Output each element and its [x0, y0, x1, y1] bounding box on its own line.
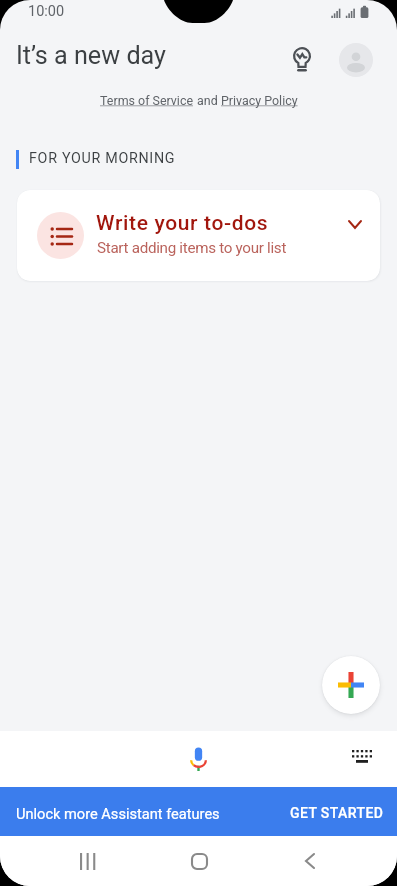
- staticText: FOR YOUR MORNING: [29, 150, 176, 167]
- staticText: It’s a new day: [16, 41, 167, 71]
- staticText: 10:00: [28, 3, 65, 20]
- button[interactable]: Account: [339, 43, 373, 77]
- staticText: Start adding items to your list: [97, 239, 287, 257]
- button[interactable]: Home: [179, 841, 219, 881]
- button[interactable]: Back: [290, 841, 330, 881]
- button[interactable]: Add: [322, 656, 380, 714]
- staticText: Write your to-dos: [96, 211, 269, 236]
- button[interactable]: Write your to-dos: [17, 190, 380, 281]
- button[interactable]: Recents: [68, 841, 108, 881]
- button[interactable]: Privacy Policy: [221, 93, 298, 108]
- button[interactable]: Voice input: [174, 735, 222, 783]
- button[interactable]: Unlock more Assistant features: [0, 787, 397, 836]
- button[interactable]: Explore: [282, 39, 322, 79]
- button[interactable]: Keyboard: [342, 736, 382, 776]
- staticText: and: [194, 93, 221, 108]
- staticText: GET STARTED: [290, 805, 384, 821]
- button[interactable]: Expand: [339, 208, 371, 240]
- button[interactable]: Terms of Service: [100, 93, 194, 108]
- staticText: Unlock more Assistant features: [16, 805, 220, 822]
